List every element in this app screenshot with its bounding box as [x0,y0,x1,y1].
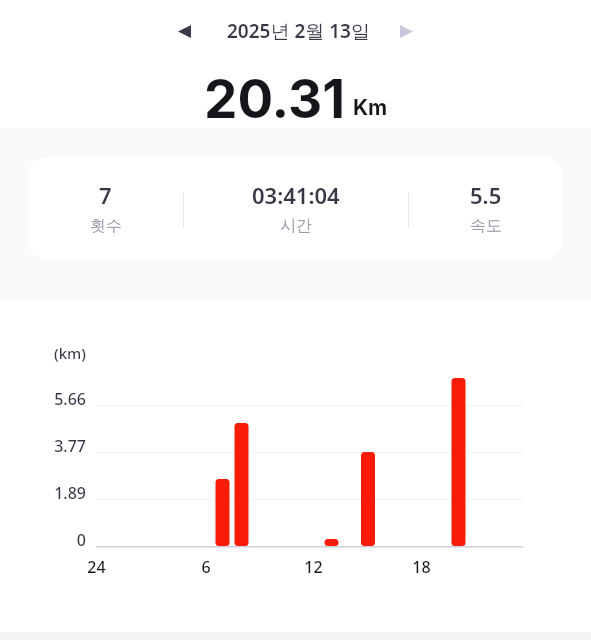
staticText: 2025년 2월 13일 [227,18,370,44]
button[interactable]: 03:41:04 [184,157,408,259]
staticText: 횟수 [90,216,122,236]
staticText: 03:41:04 [252,180,340,210]
staticText: 5.5 [470,180,502,210]
staticText: 1.89 [54,482,86,504]
staticText: 12 [304,556,323,578]
staticText: 0 [76,529,86,551]
button[interactable]: 7 [28,157,183,259]
staticText: (km) [54,343,86,363]
staticText: Km [353,95,388,120]
staticText: 6 [201,556,211,578]
staticText: 20.31 [204,67,346,131]
staticText: 속도 [470,216,502,236]
staticText: 18 [412,556,431,578]
staticText: 5.66 [54,388,86,410]
staticText: 7 [99,180,112,210]
staticText: 시간 [280,216,312,236]
button[interactable]: 5.5 [409,157,563,259]
staticText: 3.77 [54,435,86,457]
button[interactable]: Previous day [168,14,203,49]
staticText: 24 [87,556,106,578]
button[interactable]: Next day [388,14,423,49]
